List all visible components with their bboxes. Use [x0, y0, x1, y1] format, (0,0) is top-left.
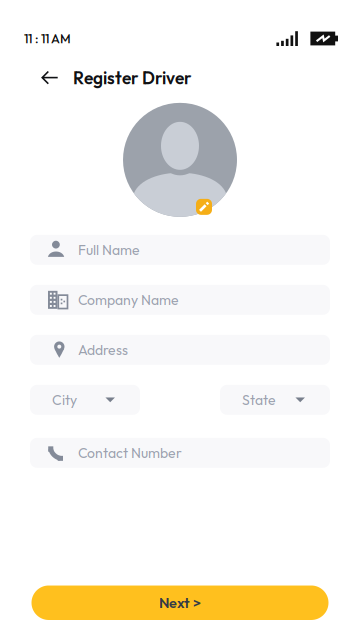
staticText: Company Name	[78, 291, 179, 309]
staticText: City	[52, 391, 77, 409]
button[interactable]: Full Name	[30, 235, 330, 265]
button[interactable]: Company Name	[30, 285, 330, 315]
staticText: 11 : 11 AM	[24, 30, 71, 46]
staticText: Register Driver	[73, 67, 192, 89]
staticText: State	[242, 391, 276, 409]
button[interactable]: Next >	[31, 585, 328, 620]
button[interactable]: State	[220, 385, 330, 415]
staticText: Address	[78, 341, 128, 359]
staticText: Full Name	[78, 241, 140, 259]
button[interactable]: City	[30, 385, 140, 415]
button[interactable]: Contact Number	[30, 438, 330, 468]
button[interactable]: Address	[30, 335, 330, 365]
staticText: Next >	[159, 594, 201, 612]
staticText: Contact Number	[78, 444, 182, 462]
button[interactable]: Edit photo	[196, 199, 212, 215]
button[interactable]: Back	[41, 70, 59, 86]
